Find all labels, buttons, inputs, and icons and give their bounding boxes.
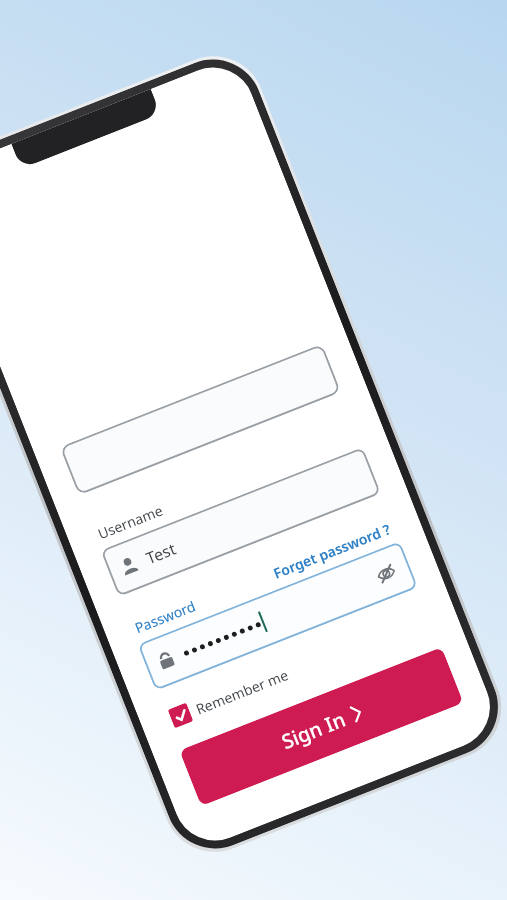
staticText: Password xyxy=(132,596,198,637)
button[interactable]: Toggle password visibility xyxy=(137,541,418,691)
button[interactable]: Test xyxy=(100,447,381,597)
button[interactable]: Sign In xyxy=(179,647,464,806)
staticText: Remember me xyxy=(193,665,291,719)
staticText: Test xyxy=(143,537,180,569)
button[interactable]: Remember me xyxy=(167,664,291,728)
button[interactable]: Toggle password visibility xyxy=(364,551,408,595)
staticText: Sign In xyxy=(277,705,350,755)
button[interactable]: Forget password ? xyxy=(271,519,394,583)
staticText: Username xyxy=(95,500,166,543)
button[interactable] xyxy=(60,344,341,495)
